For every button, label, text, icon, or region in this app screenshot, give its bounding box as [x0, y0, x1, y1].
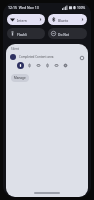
staticText: Do Not Disturb [58, 32, 71, 36]
staticText: Manage [14, 76, 26, 80]
button[interactable]: Settings [62, 62, 69, 69]
staticText: Internet [17, 18, 28, 22]
button[interactable]: Laptop [53, 62, 60, 69]
button[interactable]: Tablet [35, 62, 42, 69]
button[interactable]: Manage [11, 74, 29, 82]
button[interactable]: Do Not Disturb [48, 28, 87, 39]
button[interactable]: Phone [44, 62, 51, 69]
button[interactable]: Internet [7, 14, 45, 25]
staticText: Flashlight [17, 32, 29, 36]
staticText: Silent [11, 47, 20, 51]
button[interactable]: Bluetooth [48, 14, 87, 25]
button[interactable]: Flashlight [7, 28, 45, 39]
button[interactable]: Notification options [79, 55, 84, 60]
button[interactable]: Mobile [17, 62, 24, 69]
button[interactable]: Completed Content area [6, 54, 88, 60]
staticText: Bluetooth [58, 18, 69, 22]
button[interactable]: Device [26, 62, 33, 69]
staticText: Completed Content area [19, 55, 79, 59]
staticText: 100% [77, 6, 86, 10]
staticText: 12:15 Wed Nov 13 [8, 5, 39, 10]
